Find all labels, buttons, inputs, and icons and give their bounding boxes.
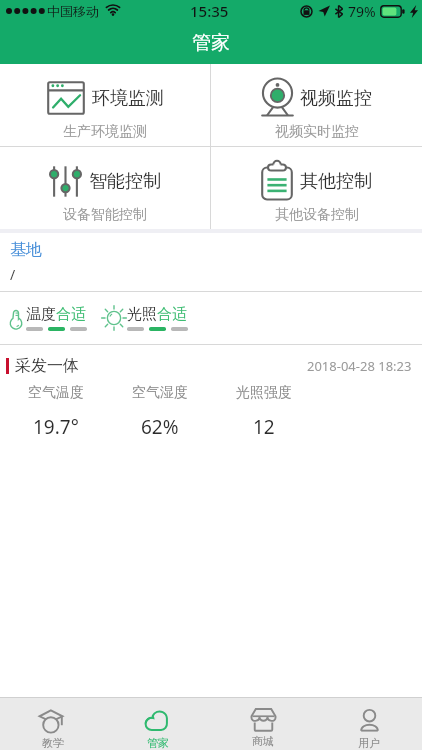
staticText: 视频实时监控	[275, 123, 359, 141]
button[interactable]: 商城	[210, 698, 316, 750]
staticText: 管家	[147, 736, 169, 750]
staticText: 19.7°	[33, 414, 79, 440]
staticText: 光照强度	[236, 384, 292, 402]
staticText: 62%	[141, 414, 179, 440]
staticText: 合适	[56, 305, 86, 324]
staticText: 温度	[26, 305, 56, 324]
button[interactable]: 管家	[105, 698, 210, 750]
staticText: 79%	[348, 2, 376, 21]
button[interactable]: 视频监控	[211, 64, 422, 146]
button[interactable]: 用户	[316, 698, 422, 750]
button[interactable]: 温度	[6, 305, 87, 331]
staticText: 15:35	[190, 1, 229, 21]
staticText: 2018-04-28 18:23	[307, 357, 412, 375]
staticText: 管家	[192, 31, 230, 55]
button[interactable]: 智能控制	[0, 147, 210, 229]
staticText: 设备智能控制	[63, 206, 147, 224]
staticText: 空气温度	[28, 384, 84, 402]
button[interactable]: 其他控制	[211, 147, 422, 229]
staticText: 空气湿度	[132, 384, 188, 402]
staticText: 教学	[42, 736, 64, 750]
staticText: 其他设备控制	[275, 206, 359, 224]
staticText: 生产环境监测	[63, 123, 147, 141]
button[interactable]: 环境监测	[0, 64, 210, 146]
staticText: 中国移动	[47, 3, 99, 19]
staticText: 环境监测	[92, 87, 164, 110]
button[interactable]: 教学	[0, 698, 105, 750]
staticText: /	[10, 265, 16, 284]
staticText: 基地	[10, 240, 42, 260]
staticText: 12	[253, 414, 275, 440]
staticText: 光照	[127, 305, 157, 324]
staticText: 采发一体	[15, 356, 79, 376]
staticText: 智能控制	[89, 170, 161, 193]
button[interactable]: 采发一体	[0, 345, 422, 452]
staticText: 用户	[358, 736, 380, 750]
button[interactable]: 基地	[0, 233, 422, 291]
staticText: 商城	[252, 734, 274, 748]
staticText: 其他控制	[300, 170, 372, 193]
staticText: 合适	[157, 305, 187, 324]
button[interactable]: 光照	[101, 305, 188, 331]
staticText: 视频监控	[300, 87, 372, 110]
